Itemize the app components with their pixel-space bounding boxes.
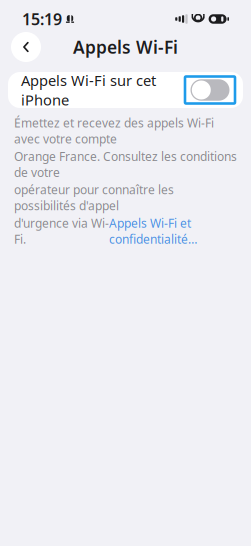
button[interactable]: Appels Wi-Fi sur cet iPhone bbox=[8, 72, 243, 108]
staticText: Émettez et recevez des appels Wi-Fi avec… bbox=[14, 115, 214, 147]
staticText: Appels Wi-Fi sur cet iPhone bbox=[21, 70, 156, 109]
button[interactable]: Retour bbox=[9, 30, 43, 64]
staticText: Appels Wi-Fi et confidentialité… bbox=[109, 215, 197, 247]
staticText: 15:19 bbox=[22, 8, 62, 30]
staticText: opérateur pour connaître les possibilité… bbox=[14, 182, 174, 214]
staticText: Appels Wi-Fi bbox=[73, 35, 178, 58]
staticText: d'urgence via Wi-Fi. bbox=[14, 215, 109, 247]
staticText: Orange France. Consultez les conditions … bbox=[14, 148, 237, 180]
button[interactable]: Appels Wi-Fi et confidentialité… bbox=[109, 215, 197, 247]
